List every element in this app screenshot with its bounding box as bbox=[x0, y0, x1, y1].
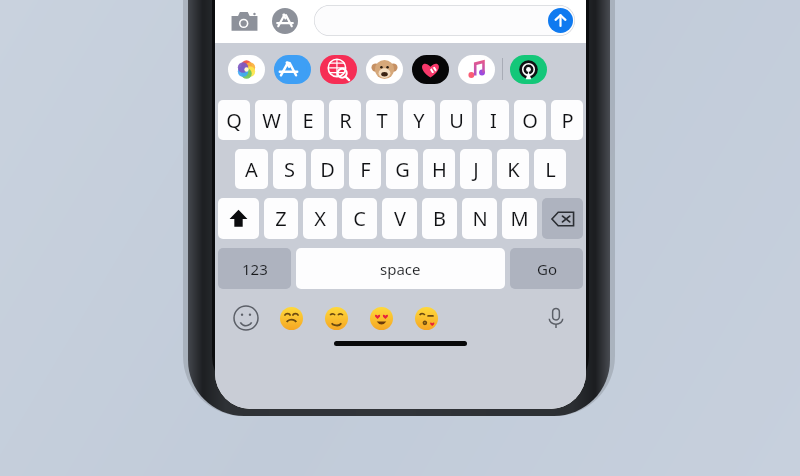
button[interactable]: App Store bbox=[271, 7, 299, 35]
button[interactable]: Camera bbox=[229, 6, 259, 36]
staticText: R bbox=[339, 107, 352, 134]
button[interactable]: Y bbox=[403, 100, 435, 140]
staticText: K bbox=[507, 156, 520, 183]
button[interactable]: M bbox=[502, 198, 537, 239]
staticText: space bbox=[380, 259, 421, 279]
staticText: E bbox=[302, 107, 314, 134]
staticText: 123 bbox=[242, 259, 268, 279]
staticText: X bbox=[314, 205, 326, 232]
button[interactable]: Z bbox=[264, 198, 298, 239]
staticText: Y bbox=[413, 107, 425, 134]
button[interactable]: Send bbox=[314, 5, 575, 36]
button[interactable]: G bbox=[386, 149, 418, 189]
button[interactable]: H bbox=[423, 149, 455, 189]
staticText: Q bbox=[226, 107, 242, 134]
staticText: J bbox=[473, 156, 479, 183]
staticText: B bbox=[433, 205, 446, 232]
staticText: T bbox=[376, 107, 388, 134]
staticText: Z bbox=[275, 205, 287, 232]
staticText: C bbox=[353, 205, 366, 232]
button[interactable]: Dictation bbox=[544, 306, 568, 330]
button[interactable]: P bbox=[551, 100, 583, 140]
button[interactable]: Heart eyes face bbox=[370, 307, 393, 330]
staticText: F bbox=[360, 156, 371, 183]
staticText: D bbox=[320, 156, 335, 183]
button[interactable]: Backspace bbox=[542, 198, 583, 239]
staticText: V bbox=[394, 205, 406, 232]
staticText: O bbox=[522, 107, 538, 134]
button[interactable]: 123 bbox=[218, 248, 291, 289]
staticText: U bbox=[449, 107, 464, 134]
button[interactable]: O bbox=[514, 100, 546, 140]
button[interactable]: L bbox=[534, 149, 566, 189]
button[interactable]: More apps bbox=[510, 55, 547, 84]
button[interactable]: space bbox=[296, 248, 505, 289]
staticText: A bbox=[245, 156, 258, 183]
button[interactable]: K bbox=[497, 149, 529, 189]
button[interactable]: Memoji bbox=[366, 55, 403, 84]
staticText: W bbox=[262, 107, 281, 134]
button[interactable]: B bbox=[422, 198, 457, 239]
button[interactable]: A bbox=[235, 149, 268, 189]
button[interactable]: W bbox=[255, 100, 287, 140]
button[interactable]: E bbox=[292, 100, 324, 140]
staticText: P bbox=[561, 107, 574, 134]
button[interactable]: Shift bbox=[218, 198, 259, 239]
staticText: N bbox=[472, 205, 488, 232]
button[interactable]: Music bbox=[458, 55, 495, 84]
button[interactable]: Emoji keyboard bbox=[233, 305, 259, 331]
staticText: M bbox=[510, 205, 529, 232]
button[interactable]: Photos bbox=[228, 55, 265, 84]
staticText: I bbox=[490, 107, 497, 134]
button[interactable]: Relaxed face bbox=[280, 307, 303, 330]
button[interactable]: F bbox=[349, 149, 381, 189]
button[interactable]: T bbox=[366, 100, 398, 140]
button[interactable]: Q bbox=[218, 100, 250, 140]
staticText: G bbox=[395, 156, 410, 183]
button[interactable]: I bbox=[477, 100, 509, 140]
staticText: Go bbox=[537, 259, 557, 279]
button[interactable]: D bbox=[311, 149, 344, 189]
button[interactable]: R bbox=[329, 100, 361, 140]
button[interactable]: U bbox=[440, 100, 472, 140]
button[interactable]: S bbox=[273, 149, 306, 189]
button[interactable]: X bbox=[303, 198, 337, 239]
staticText: S bbox=[284, 156, 295, 183]
button[interactable]: App Store bbox=[274, 55, 311, 84]
button[interactable]: Send bbox=[548, 8, 573, 33]
button[interactable]: N bbox=[462, 198, 497, 239]
button[interactable]: C bbox=[342, 198, 377, 239]
button[interactable]: V bbox=[382, 198, 417, 239]
button[interactable]: Smiling face bbox=[325, 307, 348, 330]
button[interactable]: Kissing face bbox=[415, 307, 438, 330]
button[interactable]: Go bbox=[510, 248, 583, 289]
staticText: H bbox=[432, 156, 447, 183]
button[interactable]: J bbox=[460, 149, 492, 189]
staticText: L bbox=[545, 156, 556, 183]
button[interactable]: Image search bbox=[320, 55, 357, 84]
button[interactable]: Digital Touch bbox=[412, 55, 449, 84]
